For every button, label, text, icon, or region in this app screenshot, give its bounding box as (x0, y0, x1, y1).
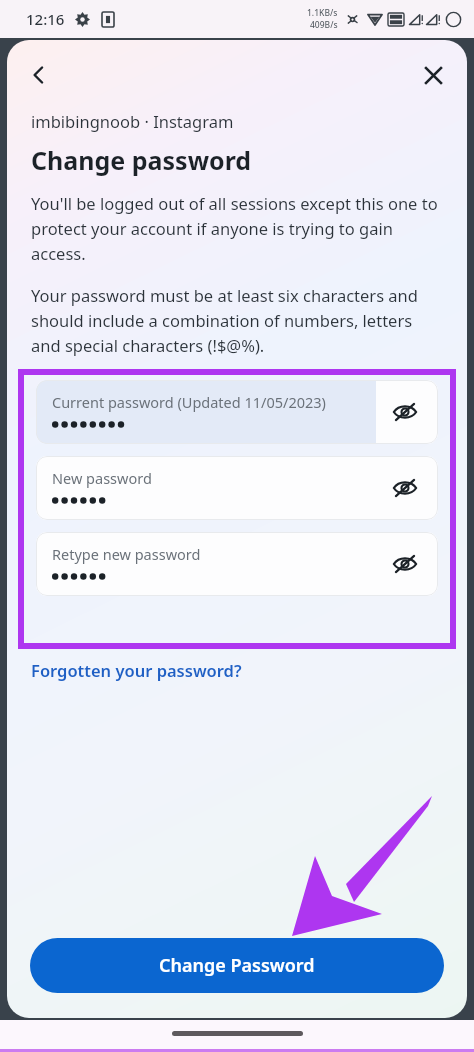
button[interactable]: Retype new password (36, 532, 438, 596)
button[interactable]: Forgotten your password? (31, 656, 242, 684)
button[interactable]: Close (409, 51, 457, 99)
button[interactable]: Show password (384, 543, 426, 585)
staticText: Current password (Updated 11/05/2023) (52, 392, 326, 412)
staticText: Change password (31, 143, 252, 177)
staticText: 409B/s (310, 19, 338, 31)
button[interactable]: Show password (384, 467, 426, 509)
staticText: Retype new password (52, 544, 201, 564)
staticText: Your password must be at least six chara… (31, 284, 443, 356)
staticText: New password (52, 468, 152, 488)
button[interactable]: Current password (Updated 11/05/2023) (36, 380, 438, 444)
button[interactable]: Change Password (30, 938, 444, 993)
button[interactable]: Back (15, 51, 63, 99)
button[interactable]: Show password (384, 391, 426, 433)
staticText: Forgotten your password? (31, 659, 242, 681)
staticText: You'll be logged out of all sessions exc… (31, 192, 443, 264)
staticText: 12:16 (26, 9, 65, 29)
button[interactable]: New password (36, 456, 438, 520)
staticText: Change Password (159, 953, 315, 978)
staticText: imbibingnoob · Instagram (31, 110, 234, 132)
staticText: 1.1KB/s (307, 7, 338, 19)
